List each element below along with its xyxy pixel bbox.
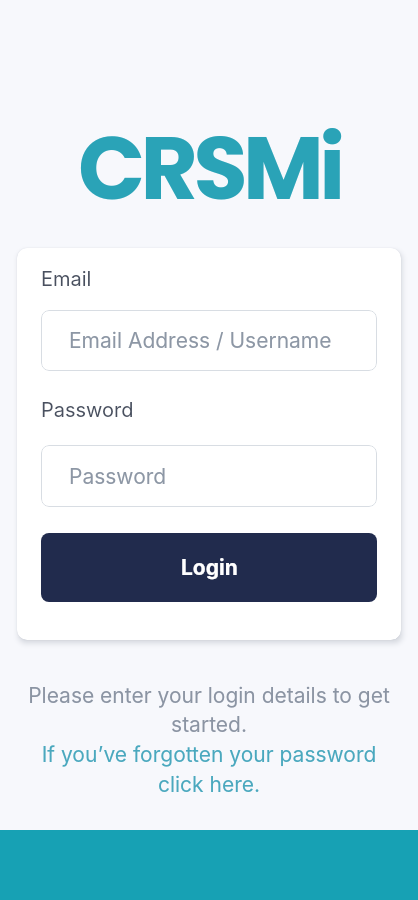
staticText: Login xyxy=(181,555,238,580)
staticText: CRSMi xyxy=(78,107,341,230)
button[interactable]: Login xyxy=(41,533,377,602)
button[interactable]: Email Address / Username xyxy=(41,310,377,371)
staticText: Password xyxy=(69,464,167,489)
button[interactable]: Password xyxy=(41,445,377,507)
staticText: Email xyxy=(41,267,92,291)
staticText: Please enter your login details to get s… xyxy=(9,683,409,737)
button[interactable]: If you’ve forgotten your password click … xyxy=(9,742,409,797)
staticText: Email Address / Username xyxy=(69,328,332,353)
staticText: Password xyxy=(41,398,134,422)
